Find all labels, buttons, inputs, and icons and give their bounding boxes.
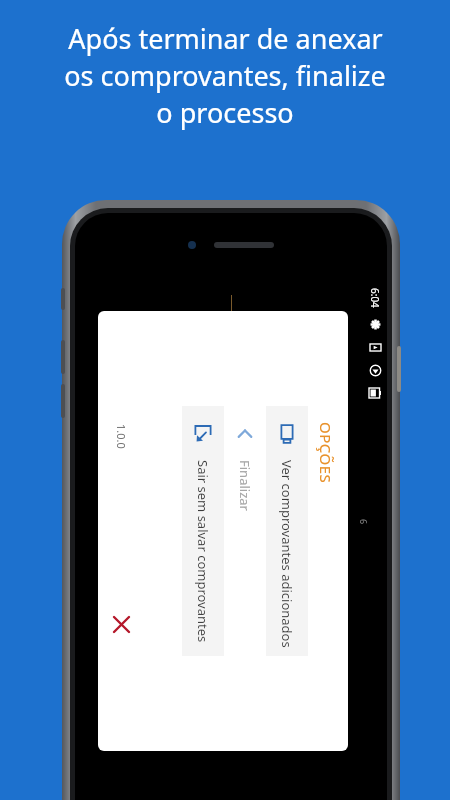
staticText: Ver comprovantes adicionados xyxy=(278,460,296,648)
button[interactable]: Ver comprovantes adicionados xyxy=(266,406,308,656)
staticText: os comprovantes, finalize xyxy=(64,57,386,94)
button[interactable]: Finalizar xyxy=(224,406,266,656)
button[interactable]: Sair sem salvar comprovantes xyxy=(182,406,224,656)
staticText: OPÇÕES xyxy=(316,422,336,484)
staticText: Após terminar de anexar xyxy=(68,20,383,57)
staticText: Sair sem salvar comprovantes xyxy=(194,460,212,643)
staticText: Finalizar xyxy=(236,460,254,511)
staticText: 6 xyxy=(358,519,370,525)
staticText: o processo xyxy=(156,94,294,131)
staticText: 6:04 xyxy=(368,288,382,308)
button[interactable]: Fechar xyxy=(108,610,136,638)
staticText: 1.0.0 xyxy=(114,424,129,449)
